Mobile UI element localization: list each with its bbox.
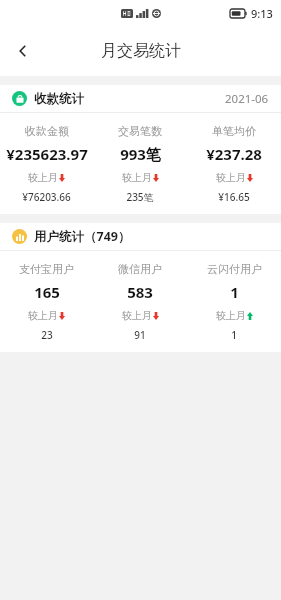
staticText: ¥235623.97 [6, 144, 88, 164]
staticText: 较上月 [122, 309, 152, 322]
staticText: ¥76203.66 [22, 190, 71, 204]
staticText: 较上月 [122, 171, 152, 184]
button[interactable]: 收款统计 [0, 85, 281, 112]
staticText: 较上月 [216, 309, 246, 322]
staticText: 收款统计 [34, 91, 84, 107]
button[interactable]: 用户统计（749） [0, 223, 281, 250]
staticText: 云闪付用户 [207, 262, 262, 276]
staticText: 月交易统计 [101, 41, 181, 61]
staticText: 993笔 [120, 144, 161, 164]
staticText: 交易笔数 [118, 124, 162, 138]
staticText: 用户统计（749） [34, 228, 131, 245]
staticText: 91 [134, 328, 146, 342]
staticText: 收款金额 [25, 124, 69, 138]
staticText: 235笔 [126, 190, 154, 204]
staticText: 较上月 [216, 171, 246, 184]
staticText: 1 [231, 328, 237, 342]
staticText: ¥237.28 [206, 144, 262, 164]
staticText: 2021-06 [225, 91, 269, 107]
staticText: 23 [41, 328, 53, 342]
staticText: ¥16.65 [218, 190, 250, 204]
staticText: 较上月 [28, 171, 58, 184]
staticText: 1 [230, 282, 239, 302]
staticText: 较上月 [28, 309, 58, 322]
staticText: 165 [34, 282, 60, 302]
staticText: 微信用户 [118, 262, 162, 276]
staticText: 583 [127, 282, 153, 302]
staticText: 单笔均价 [212, 124, 256, 138]
staticText: 9:13 [251, 6, 273, 21]
staticText: 支付宝用户 [19, 262, 74, 276]
button[interactable]: Back [0, 28, 46, 74]
